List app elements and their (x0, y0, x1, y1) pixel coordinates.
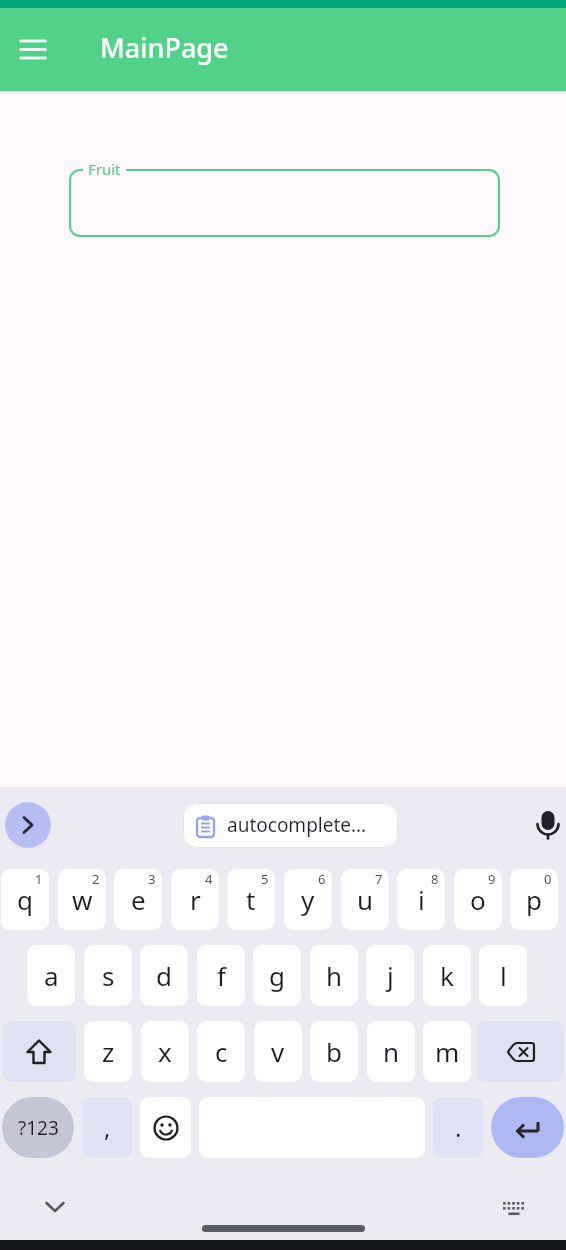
button[interactable] (10, 27, 56, 73)
staticText: v (271, 1034, 285, 1069)
button[interactable] (140, 1097, 191, 1158)
button[interactable]: b (310, 1021, 358, 1082)
button[interactable]: x (141, 1021, 189, 1082)
button[interactable] (477, 1021, 564, 1082)
staticText: j (387, 958, 394, 993)
staticText: 5 (261, 870, 269, 888)
button[interactable]: , (82, 1097, 132, 1158)
staticText: 6 (318, 870, 326, 888)
button[interactable]: m (423, 1021, 471, 1082)
staticText: b (326, 1034, 342, 1069)
button[interactable]: k (423, 945, 471, 1006)
button[interactable]: h (310, 945, 358, 1006)
button[interactable] (35, 1187, 75, 1227)
button[interactable]: n (367, 1021, 415, 1082)
staticText: 9 (488, 870, 496, 888)
staticText: z (102, 1034, 115, 1069)
staticText: y (301, 882, 315, 917)
button[interactable]: a (27, 945, 75, 1006)
staticText: x (158, 1034, 172, 1069)
staticText: a (44, 958, 59, 993)
staticText: u (357, 882, 374, 917)
staticText: h (326, 958, 343, 993)
staticText: p (526, 882, 542, 917)
staticText: w (72, 882, 93, 917)
staticText: n (383, 1034, 400, 1069)
staticText: 7 (375, 870, 383, 888)
button[interactable]: e (114, 869, 162, 930)
button[interactable]: d (140, 945, 188, 1006)
staticText: k (440, 958, 454, 993)
button[interactable]: c (197, 1021, 245, 1082)
button[interactable]: p (510, 869, 558, 930)
button[interactable]: t (227, 869, 275, 930)
staticText: d (156, 958, 172, 993)
staticText: t (246, 882, 256, 917)
staticText: 0 (544, 870, 552, 888)
staticText: MainPage (100, 29, 229, 66)
button[interactable]: s (84, 945, 132, 1006)
staticText: ?123 (18, 1115, 59, 1141)
button[interactable]: l (479, 945, 527, 1006)
button[interactable]: z (84, 1021, 132, 1082)
staticText: g (269, 958, 285, 993)
staticText: c (215, 1034, 228, 1069)
staticText: 8 (431, 870, 439, 888)
button[interactable]: . (433, 1097, 483, 1158)
button[interactable]: i (397, 869, 445, 930)
button[interactable]: ?123 (2, 1097, 74, 1158)
staticText: . (455, 1111, 462, 1144)
staticText: q (17, 882, 33, 917)
button[interactable] (5, 802, 51, 848)
staticText: m (435, 1034, 460, 1069)
button[interactable]: u (341, 869, 389, 930)
staticText: i (418, 882, 425, 917)
staticText: s (102, 958, 115, 993)
button[interactable] (2, 1021, 76, 1082)
button[interactable]: f (197, 945, 245, 1006)
staticText: Fruit (88, 159, 121, 179)
staticText: autocomplete… (227, 812, 367, 838)
staticText: 1 (35, 870, 43, 888)
button[interactable]: y (284, 869, 332, 930)
button[interactable]: q (1, 869, 49, 930)
button[interactable]: j (366, 945, 414, 1006)
button[interactable]: o (454, 869, 502, 930)
button[interactable]: g (253, 945, 301, 1006)
staticText: 4 (205, 870, 213, 888)
button[interactable]: autocomplete… (183, 803, 398, 848)
staticText: , (104, 1111, 111, 1144)
button[interactable]: r (171, 869, 219, 930)
button[interactable]: v (254, 1021, 302, 1082)
button[interactable] (491, 1097, 564, 1158)
button[interactable]: w (58, 869, 106, 930)
staticText: o (470, 882, 486, 917)
staticText: 2 (92, 870, 100, 888)
button[interactable] (528, 805, 566, 845)
button[interactable] (494, 1189, 534, 1229)
staticText: l (500, 958, 507, 993)
staticText: r (190, 882, 201, 917)
staticText: e (131, 882, 146, 917)
staticText: f (217, 958, 226, 993)
button[interactable]: Fruit (69, 169, 500, 237)
staticText: 3 (148, 870, 156, 888)
